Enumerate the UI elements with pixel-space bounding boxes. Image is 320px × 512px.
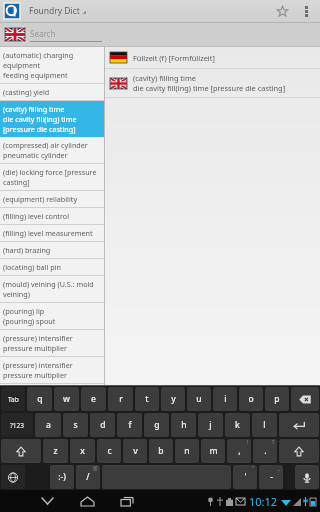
staticText: :-) — [58, 471, 66, 483]
button[interactable]: (pressure) intensifier — [0, 357, 104, 383]
staticText: pressure multiplier — [3, 343, 67, 353]
staticText: pneumatic cylinder — [3, 150, 68, 160]
staticText: Foundry Dict — [29, 5, 80, 17]
button[interactable]: (cavity) filling time — [105, 69, 320, 97]
button[interactable]: g — [144, 413, 169, 437]
button[interactable]: (pouring) lip — [0, 303, 104, 329]
button[interactable]: Key — [291, 387, 319, 411]
button[interactable]: Key — [1, 439, 41, 463]
button[interactable]: (hard) brazing — [0, 242, 104, 258]
staticText: e — [91, 393, 96, 405]
button[interactable]: j — [198, 413, 223, 437]
button[interactable]: Search — [30, 28, 102, 42]
button[interactable]: e — [81, 387, 106, 411]
button[interactable]: Add to favorites — [269, 1, 295, 21]
button[interactable]: w — [54, 387, 79, 411]
button[interactable]: l — [252, 413, 277, 437]
button[interactable]: Source language English — [0, 23, 30, 46]
staticText: v — [133, 445, 138, 457]
staticText: [pressure die casting] — [3, 124, 76, 134]
button[interactable]: i — [213, 387, 237, 411]
staticText: Search — [30, 28, 56, 39]
button[interactable]: k — [225, 413, 250, 437]
button[interactable]: u — [187, 387, 211, 411]
staticText: Füllzeit (f) [Formfüllzeit] — [133, 53, 215, 63]
button[interactable]: c — [97, 439, 121, 463]
button[interactable]: Home — [74, 491, 100, 511]
button[interactable]: ' — [233, 465, 257, 489]
staticText: d — [100, 419, 106, 431]
button[interactable]: z — [43, 439, 68, 463]
button[interactable]: v — [123, 439, 147, 463]
staticText: ' — [244, 471, 247, 483]
button[interactable]: Tab — [1, 387, 25, 411]
button[interactable]: :-) — [50, 465, 74, 489]
staticText: / — [86, 471, 90, 483]
staticText: 10:12 — [249, 494, 278, 509]
staticText: q — [37, 393, 43, 405]
button[interactable]: (compressed) air cylinder — [0, 137, 104, 163]
button[interactable]: r — [108, 387, 133, 411]
staticText: r — [119, 393, 123, 405]
button[interactable]: ?123 — [1, 413, 33, 437]
button[interactable]: (automatic) charging — [0, 47, 104, 83]
button[interactable]: , — [227, 439, 251, 463]
staticText: (cavity) filling time — [133, 73, 197, 83]
button[interactable]: App icon, up — [3, 2, 21, 20]
button[interactable]: d — [90, 413, 115, 437]
button[interactable]: m — [201, 439, 225, 463]
staticText: k — [235, 419, 240, 431]
staticText: , — [238, 445, 241, 457]
button[interactable]: Key — [279, 413, 319, 437]
staticText: (cavity) filling time — [3, 104, 65, 114]
button[interactable]: q — [27, 387, 52, 411]
staticText: . — [264, 445, 267, 457]
staticText: j — [209, 419, 212, 431]
button[interactable]: . — [253, 439, 277, 463]
button[interactable]: (filling) level measurement — [0, 225, 104, 241]
button[interactable]: (filling) level control — [0, 208, 104, 224]
button[interactable]: t — [135, 387, 159, 411]
button[interactable]: x — [70, 439, 95, 463]
button[interactable]: Recent apps — [114, 491, 140, 511]
button[interactable]: y — [161, 387, 185, 411]
button[interactable]: n — [175, 439, 199, 463]
button[interactable]: a — [35, 413, 61, 437]
button[interactable]: (casting) yield — [0, 84, 104, 100]
button[interactable]: (locating) ball pin — [0, 259, 104, 275]
button[interactable]: (mould) veining (U.S.: mold — [0, 276, 104, 302]
button[interactable]: Key — [295, 465, 319, 489]
staticText: @ — [93, 465, 98, 472]
staticText: (automatic) charging — [3, 50, 74, 60]
button[interactable]: f — [117, 413, 142, 437]
button[interactable]: o — [239, 387, 263, 411]
button[interactable]: Key — [1, 465, 25, 489]
staticText: " — [252, 465, 255, 472]
button[interactable]: (pressure) intensifier — [0, 330, 104, 356]
button[interactable]: (die) locking force [pressure die — [0, 164, 104, 190]
button[interactable]: h — [171, 413, 196, 437]
staticText: feeding equipment — [3, 70, 68, 80]
button[interactable]: (cavity) filling time — [0, 101, 104, 137]
staticText: (filling) level measurement — [3, 228, 93, 238]
button[interactable]: Füllzeit (f) [Formfüllzeit] — [105, 47, 320, 68]
staticText: equipment — [3, 60, 41, 70]
button[interactable]: b — [149, 439, 173, 463]
button[interactable]: s — [63, 413, 88, 437]
staticText: s — [73, 419, 78, 431]
staticText: die cavity fill(ing) time [pressure die … — [133, 83, 286, 93]
staticText: g — [154, 419, 160, 431]
button[interactable]: Key — [279, 439, 319, 463]
staticText: casting] — [3, 177, 30, 187]
button[interactable]: Back — [34, 491, 60, 511]
button[interactable]: More options — [295, 1, 317, 21]
staticText: y — [171, 393, 176, 405]
button[interactable]: - — [259, 465, 283, 489]
staticText: f — [128, 419, 132, 431]
button[interactable]: / — [76, 465, 100, 489]
button[interactable]: (equipment) reliability — [0, 191, 104, 207]
staticText: ! — [247, 439, 249, 446]
button[interactable]: p — [265, 387, 289, 411]
